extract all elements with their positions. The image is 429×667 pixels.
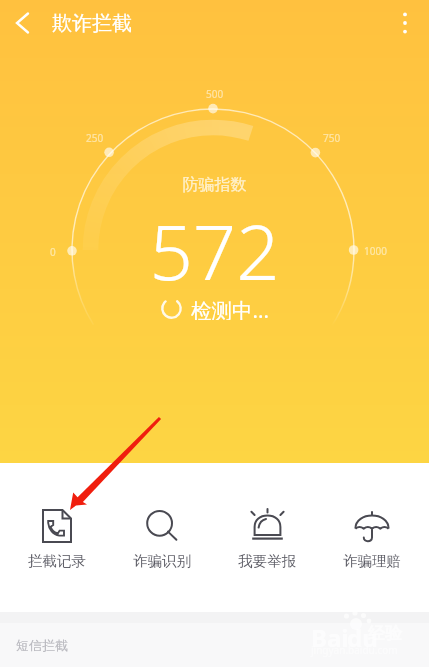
staticText: 1000 [364,244,387,258]
button[interactable]: 诈骗理赔 [319,463,424,570]
button[interactable]: Back [0,0,48,46]
button[interactable]: 拦截记录 [5,463,109,570]
staticText: 750 [323,131,341,145]
staticText: 检测中... [191,296,269,320]
staticText: 0 [50,245,56,259]
button[interactable]: 我要举报 [214,463,319,570]
button[interactable]: 诈骗识别 [109,463,214,570]
staticText: 欺诈拦截 [52,11,132,36]
staticText: 短信拦截 [16,637,68,653]
staticText: 诈骗识别 [133,552,191,570]
button[interactable]: More options [381,0,429,46]
staticText: 250 [86,131,104,145]
staticText: 防骗指数 [0,175,429,195]
staticText: 572 [0,199,429,303]
staticText: 诈骗理赔 [343,552,401,570]
staticText: 我要举报 [238,552,296,570]
staticText: 500 [206,87,224,101]
staticText: 拦截记录 [28,552,86,570]
